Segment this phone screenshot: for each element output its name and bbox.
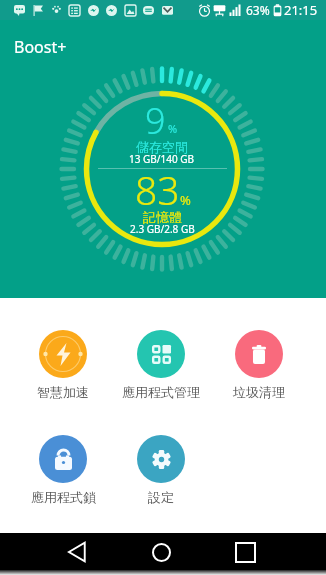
staticText: 2.3 GB/2.8 GB xyxy=(130,222,195,236)
button[interactable]: 應用程式管理 xyxy=(112,330,210,400)
staticText: 21:15 xyxy=(284,1,318,19)
staticText: 記憶體 xyxy=(143,209,182,225)
staticText: 13 GB/140 GB xyxy=(129,152,195,166)
staticText: 垃圾清理 xyxy=(233,384,285,400)
staticText: 設定 xyxy=(148,489,174,505)
button[interactable]: Recents xyxy=(229,536,261,568)
button[interactable]: 設定 xyxy=(112,435,210,505)
button[interactable]: Home xyxy=(145,536,177,568)
staticText: 應用程式鎖 xyxy=(31,489,96,505)
button[interactable]: 智慧加速 xyxy=(14,330,112,400)
staticText: 儲存空間 xyxy=(136,139,188,155)
staticText: 83 xyxy=(135,163,180,216)
button[interactable]: 垃圾清理 xyxy=(210,330,308,400)
staticText: % xyxy=(168,121,178,136)
button[interactable]: Back xyxy=(61,536,93,568)
staticText: 9 xyxy=(145,96,166,145)
staticText: % xyxy=(180,191,191,209)
staticText: 應用程式管理 xyxy=(122,384,200,400)
staticText: Boost+ xyxy=(14,36,67,58)
button[interactable]: 應用程式鎖 xyxy=(14,435,112,505)
staticText: 智慧加速 xyxy=(37,384,89,400)
staticText: 63% xyxy=(246,2,270,18)
